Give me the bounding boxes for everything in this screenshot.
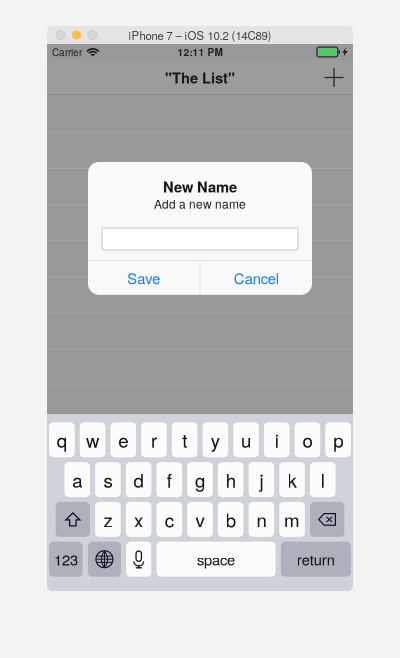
button[interactable]: x <box>126 502 151 537</box>
button[interactable]: a <box>64 462 90 497</box>
button[interactable]: b <box>218 502 243 537</box>
button[interactable]: w <box>80 422 105 457</box>
button[interactable]: y <box>203 422 228 457</box>
button[interactable]: space <box>157 542 276 577</box>
button[interactable]: f <box>156 462 182 497</box>
button[interactable]: n <box>249 502 274 537</box>
staticText: g <box>195 466 205 493</box>
button[interactable]: k <box>279 462 305 497</box>
staticText: Cancel <box>234 267 279 288</box>
button[interactable]: o <box>295 422 320 457</box>
button[interactable]: e <box>110 422 136 457</box>
button[interactable]: i <box>264 422 289 457</box>
staticText: Carrier <box>52 45 82 59</box>
staticText: x <box>134 506 143 533</box>
staticText: u <box>241 426 251 453</box>
button[interactable]: Add <box>315 60 353 95</box>
button[interactable]: c <box>156 502 182 537</box>
staticText: a <box>72 466 82 493</box>
button[interactable]: return <box>281 542 351 577</box>
button[interactable] <box>88 542 121 577</box>
staticText: iPhone 7 – iOS 10.2 (14C89) <box>128 27 271 43</box>
button[interactable]: Cancel <box>200 261 312 295</box>
staticText: e <box>118 426 128 453</box>
staticText: Save <box>127 267 160 288</box>
staticText: o <box>302 426 312 453</box>
staticText: space <box>197 549 235 570</box>
staticText: r <box>151 426 157 453</box>
button[interactable]: m <box>279 502 305 537</box>
button[interactable] <box>310 502 344 537</box>
staticText: t <box>182 426 187 453</box>
button[interactable] <box>126 542 151 577</box>
staticText: d <box>134 466 144 493</box>
staticText: k <box>288 466 297 493</box>
button[interactable]: r <box>141 422 167 457</box>
button[interactable]: g <box>187 462 213 497</box>
staticText: 12:11 PM <box>177 45 222 59</box>
staticText: i <box>275 426 279 453</box>
staticText: j <box>259 466 263 493</box>
button[interactable]: l <box>310 462 336 497</box>
staticText: s <box>103 466 112 493</box>
staticText: New Name <box>163 176 237 197</box>
staticText: f <box>167 466 172 493</box>
staticText: Add a new name <box>154 195 246 212</box>
staticText: h <box>226 466 236 493</box>
staticText: 123 <box>54 549 78 570</box>
staticText: w <box>86 426 99 453</box>
staticText: "The List" <box>165 67 235 88</box>
button[interactable]: q <box>49 422 75 457</box>
staticText: p <box>333 426 343 453</box>
button[interactable]: p <box>325 422 351 457</box>
staticText: q <box>57 426 67 453</box>
staticText: c <box>165 506 174 533</box>
button[interactable]: u <box>233 422 259 457</box>
staticText: m <box>284 506 300 533</box>
button[interactable]: j <box>249 462 274 497</box>
button[interactable]: t <box>172 422 197 457</box>
button[interactable]: s <box>95 462 121 497</box>
staticText: y <box>211 426 220 453</box>
staticText: v <box>195 506 204 533</box>
staticText: n <box>256 506 266 533</box>
staticText: z <box>103 506 112 533</box>
staticText: b <box>226 506 236 533</box>
staticText: return <box>297 549 335 570</box>
button[interactable] <box>56 502 90 537</box>
button[interactable]: d <box>126 462 151 497</box>
button[interactable]: h <box>218 462 243 497</box>
staticText: l <box>321 466 325 493</box>
button[interactable]: v <box>187 502 213 537</box>
button[interactable]: Save <box>88 261 200 295</box>
button[interactable]: 123 <box>49 542 83 577</box>
button[interactable]: z <box>95 502 121 537</box>
